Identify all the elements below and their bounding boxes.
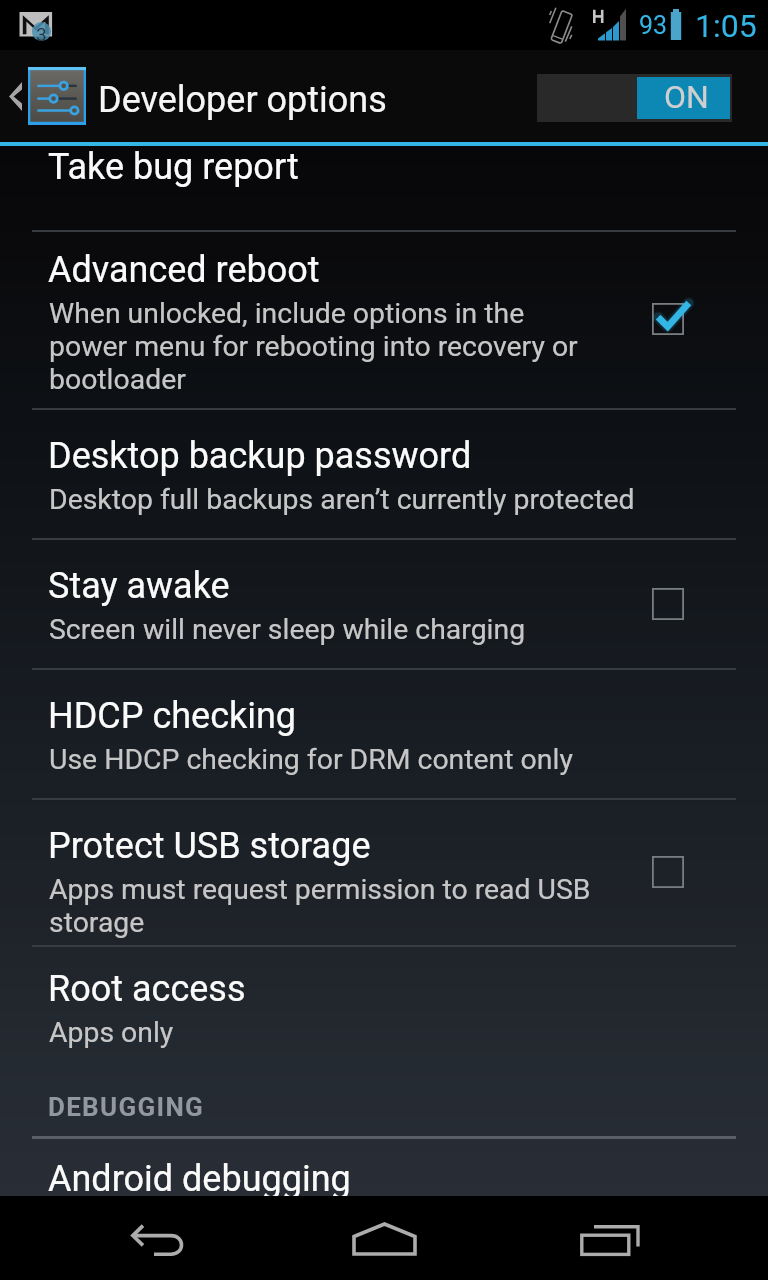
button[interactable]: Recent apps <box>525 1196 695 1280</box>
staticText: When unlocked, include options in the <box>49 297 525 330</box>
button[interactable]: Protect USB storage <box>0 798 768 945</box>
button[interactable]: HDCP checking <box>0 668 768 798</box>
staticText: Use HDCP checking for DRM content only <box>49 743 573 776</box>
staticText: Stay awake <box>48 564 230 607</box>
staticText: Android debugging <box>48 1157 351 1200</box>
staticText: Screen will never sleep while charging <box>49 613 526 646</box>
button[interactable]: Desktop backup password <box>0 408 768 538</box>
staticText: ON <box>664 78 709 116</box>
button[interactable]: Root access <box>0 945 768 1075</box>
staticText: bootloader <box>49 363 186 396</box>
button[interactable]: Take bug report <box>0 146 768 230</box>
staticText: 3 <box>36 23 47 45</box>
staticText: storage <box>49 906 145 939</box>
staticText: Root access <box>48 967 246 1010</box>
staticText: 93 <box>639 11 668 40</box>
staticText: Apps must request permission to read USB <box>49 873 591 906</box>
staticText: Protect USB storage <box>48 824 371 867</box>
staticText: Apps only <box>49 1016 174 1049</box>
staticText: 1:05 <box>695 7 757 45</box>
staticText: Desktop full backups aren’t currently pr… <box>49 483 635 516</box>
staticText: power menu for rebooting into recovery o… <box>49 330 578 363</box>
button[interactable]: Android debugging <box>0 1139 768 1196</box>
staticText: Advanced reboot <box>48 248 320 291</box>
button[interactable]: Stay awake <box>0 538 768 668</box>
button[interactable]: Advanced reboot <box>0 230 768 408</box>
button[interactable]: Home <box>299 1196 469 1280</box>
button[interactable]: Navigate up <box>0 50 98 142</box>
staticText: Desktop backup password <box>48 434 472 477</box>
button[interactable]: Developer options on <box>537 74 732 122</box>
staticText: DEBUGGING <box>48 1092 205 1122</box>
staticText: Developer options <box>98 79 387 121</box>
button[interactable]: Back <box>75 1196 245 1280</box>
staticText: HDCP checking <box>48 694 297 737</box>
staticText: Take bug report <box>48 145 299 188</box>
